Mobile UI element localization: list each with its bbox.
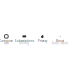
staticText: Boost (56, 39, 64, 43)
button[interactable]: Shortcuts (56, 32, 64, 40)
staticText: Subscriptions (15, 39, 34, 43)
button[interactable]: Subscriptions (20, 32, 28, 40)
staticText: Compose (0, 39, 13, 43)
button[interactable]: Privacy (38, 32, 46, 40)
staticText: New (4, 41, 9, 45)
staticText: Privacy (38, 39, 47, 43)
button[interactable]: Compose (2, 32, 10, 40)
staticText: Billing (19, 41, 29, 45)
staticText: Turbo mode (51, 41, 68, 45)
